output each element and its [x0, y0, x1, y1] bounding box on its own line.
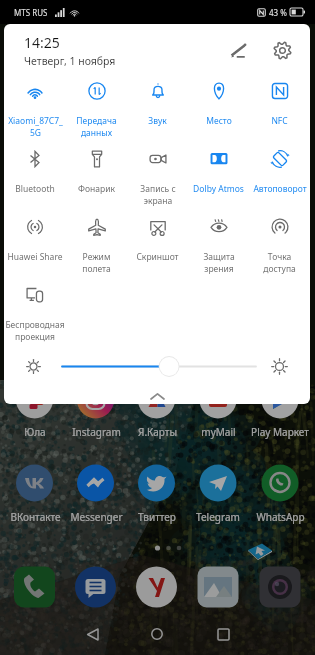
- staticText: Запись с экрана: [140, 183, 176, 207]
- staticText: myMail: [201, 425, 236, 439]
- button[interactable]: Режим полета: [66, 212, 127, 280]
- button[interactable]: Home: [137, 614, 177, 654]
- button[interactable]: NFC: [249, 76, 310, 144]
- button[interactable]: Место: [188, 76, 249, 144]
- button[interactable]: Беспроводная проекция: [4, 280, 66, 348]
- button[interactable]: Back: [72, 614, 112, 654]
- staticText: MTS RUS: [14, 7, 48, 18]
- staticText: Xiaomi_87C7_ 5G: [8, 115, 63, 139]
- button[interactable]: app: [72, 460, 120, 522]
- button[interactable]: Защита зрения: [188, 212, 249, 280]
- button[interactable]: Звук: [127, 76, 188, 144]
- staticText: Play Маркет: [251, 425, 309, 439]
- staticText: Точка доступа: [263, 251, 296, 275]
- staticText: Передача данных: [76, 115, 117, 139]
- staticText: Dolby Atmos: [193, 183, 244, 195]
- staticText: Telegram: [196, 510, 240, 524]
- staticText: Защита зрения: [203, 251, 235, 275]
- button[interactable]: dock: [72, 565, 120, 610]
- button[interactable]: app: [11, 460, 59, 522]
- staticText: Huawei Share: [7, 251, 63, 263]
- button[interactable]: app: [256, 460, 304, 522]
- staticText: Автоповорот: [253, 183, 307, 195]
- staticText: ВКонтакте: [10, 510, 61, 524]
- staticText: WhatsApp: [256, 510, 305, 524]
- staticText: Твиттер: [138, 510, 176, 524]
- button[interactable]: Settings: [267, 35, 297, 65]
- button[interactable]: app: [133, 460, 181, 522]
- button[interactable]: Точка доступа: [249, 212, 310, 280]
- staticText: Скриншот: [136, 251, 179, 263]
- staticText: Instagram: [72, 425, 121, 439]
- button[interactable]: Brightness: [4, 354, 310, 384]
- button[interactable]: dock: [133, 565, 181, 610]
- staticText: Четверг, 1 ноября: [24, 54, 116, 68]
- button[interactable]: Dolby Atmos: [188, 144, 249, 212]
- button[interactable]: dock: [11, 565, 59, 610]
- staticText: Беспроводная проекция: [5, 319, 65, 343]
- button[interactable]: Recents: [203, 614, 243, 654]
- staticText: Я.Карты: [138, 425, 177, 439]
- staticText: Messenger: [70, 510, 123, 524]
- staticText: Юла: [24, 425, 46, 439]
- button[interactable]: dock: [194, 565, 242, 610]
- button[interactable]: Bluetooth: [4, 144, 66, 212]
- button[interactable]: Автоповорот: [249, 144, 310, 212]
- button[interactable]: Передача данных: [66, 76, 127, 144]
- button[interactable]: Фонарик: [66, 144, 127, 212]
- staticText: Режим полета: [82, 251, 111, 275]
- staticText: NFC: [271, 115, 288, 127]
- button[interactable]: Скриншот: [127, 212, 188, 280]
- staticText: Bluetooth: [15, 183, 55, 195]
- button[interactable]: app: [194, 460, 242, 522]
- button[interactable]: Запись с экрана: [127, 144, 188, 212]
- staticText: 14:25: [24, 33, 60, 52]
- button[interactable]: Xiaomi_87C7_ 5G: [4, 76, 66, 144]
- button[interactable]: dock: [256, 565, 304, 610]
- staticText: Фонарик: [78, 183, 115, 195]
- button[interactable]: Collapse: [4, 387, 310, 404]
- staticText: Место: [206, 115, 232, 127]
- button[interactable]: Edit: [224, 35, 254, 65]
- staticText: Звук: [148, 115, 167, 127]
- button[interactable]: Huawei Share: [4, 212, 66, 280]
- staticText: 43 %: [269, 7, 287, 18]
